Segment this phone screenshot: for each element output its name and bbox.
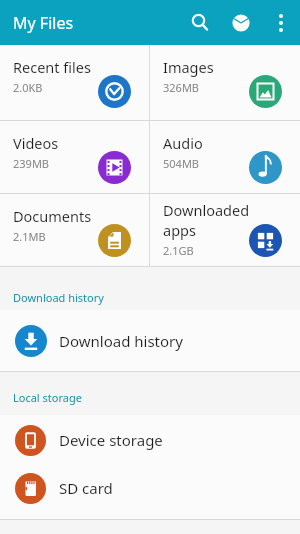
- staticText: 2.1MB: [13, 229, 46, 244]
- staticText: 2.0KB: [13, 80, 43, 95]
- staticText: 239MB: [13, 156, 50, 171]
- staticText: 326MB: [163, 80, 200, 95]
- staticText: Download history: [59, 331, 183, 351]
- button[interactable]: Videos: [0, 121, 149, 193]
- button[interactable]: Documents: [0, 194, 149, 266]
- staticText: Audio: [163, 133, 203, 153]
- button[interactable]: Download history: [0, 310, 300, 371]
- staticText: Download history: [13, 290, 104, 305]
- button[interactable]: [185, 8, 215, 38]
- staticText: Documents: [13, 206, 92, 226]
- staticText: Local storage: [13, 390, 82, 405]
- staticText: Recent files: [13, 57, 91, 77]
- staticText: Images: [163, 57, 214, 77]
- staticText: Videos: [13, 133, 59, 153]
- staticText: Device storage: [59, 430, 163, 450]
- button[interactable]: [267, 9, 295, 37]
- button[interactable]: SD card: [0, 465, 300, 511]
- button[interactable]: [226, 8, 256, 38]
- staticText: 504MB: [163, 156, 200, 171]
- staticText: Downloaded: [163, 200, 250, 220]
- button[interactable]: Downloaded: [150, 194, 300, 266]
- staticText: My Files: [13, 12, 74, 34]
- button[interactable]: Device storage: [0, 415, 300, 465]
- staticText: 2.1GB: [163, 243, 194, 258]
- button[interactable]: Audio: [150, 121, 300, 193]
- button[interactable]: Recent files: [0, 45, 149, 120]
- button[interactable]: Images: [150, 45, 300, 120]
- staticText: SD card: [59, 478, 113, 498]
- staticText: apps: [163, 220, 196, 240]
